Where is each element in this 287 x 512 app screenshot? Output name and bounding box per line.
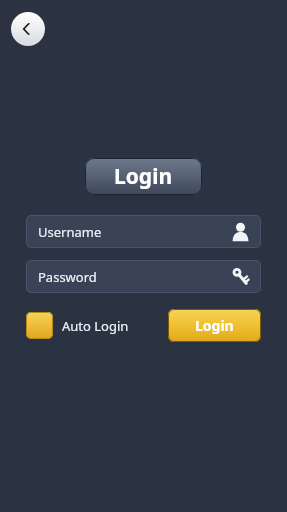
button[interactable]: Login <box>168 309 261 342</box>
staticText: Username <box>38 223 102 241</box>
button[interactable]: Auto Login <box>26 312 129 339</box>
button[interactable]: Password <box>26 260 261 293</box>
button[interactable]: Login <box>85 158 202 195</box>
staticText: Login <box>114 162 173 191</box>
staticText: Password <box>38 268 97 286</box>
staticText: Auto Login <box>62 317 129 335</box>
button[interactable]: Back <box>11 12 45 46</box>
staticText: Login <box>195 316 234 335</box>
button[interactable]: Username <box>26 215 261 248</box>
